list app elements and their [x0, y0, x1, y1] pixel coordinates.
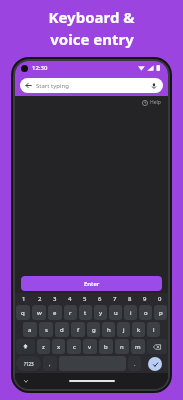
button[interactable]: w: [32, 305, 46, 320]
button[interactable]: 0: [153, 295, 167, 303]
staticText: 3: [53, 295, 57, 303]
staticText: k: [137, 326, 141, 334]
button[interactable]: g: [87, 322, 100, 337]
button[interactable]: 1: [16, 295, 31, 303]
staticText: .: [134, 360, 136, 368]
staticText: i: [130, 309, 132, 317]
staticText: 12:30: [32, 64, 48, 72]
button[interactable]: b: [99, 339, 113, 354]
staticText: Start typing: [36, 82, 69, 90]
staticText: y: [99, 309, 103, 317]
button[interactable]: c: [67, 339, 81, 354]
staticText: c: [73, 343, 76, 351]
button[interactable]: Backspace: [147, 339, 167, 354]
staticText: b: [104, 343, 108, 351]
staticText: Help: [150, 99, 161, 106]
button[interactable]: 9: [138, 295, 152, 303]
button[interactable]: n: [115, 339, 129, 354]
other: Back: [25, 82, 32, 89]
staticText: x: [57, 343, 61, 351]
staticText: z: [42, 343, 45, 351]
staticText: ?123: [24, 361, 34, 367]
button[interactable]: a: [23, 322, 37, 337]
button[interactable]: e: [48, 305, 62, 320]
staticText: h: [107, 326, 111, 334]
staticText: v: [88, 343, 92, 351]
button[interactable]: j: [117, 322, 130, 337]
staticText: n: [120, 343, 124, 351]
staticText: d: [60, 326, 64, 334]
button[interactable]: p: [154, 305, 167, 320]
button[interactable]: Help: [142, 99, 161, 106]
button[interactable]: t: [79, 305, 92, 320]
button[interactable]: h: [102, 322, 115, 337]
staticText: 8: [128, 295, 132, 303]
staticText: 6: [98, 295, 102, 303]
button[interactable]: 7: [108, 295, 122, 303]
button[interactable]: d: [55, 322, 69, 337]
staticText: voice entry: [50, 29, 134, 49]
staticText: a: [28, 326, 32, 334]
staticText: 0: [158, 295, 162, 303]
button[interactable]: 8: [123, 295, 137, 303]
staticText: 4: [68, 295, 72, 303]
button[interactable]: Enter: [21, 276, 162, 291]
button[interactable]: 6: [93, 295, 107, 303]
button[interactable]: u: [109, 305, 122, 320]
other: Voice input: [150, 82, 158, 90]
button[interactable]: v: [83, 339, 97, 354]
button[interactable]: 4: [63, 295, 77, 303]
staticText: r: [69, 309, 72, 317]
button[interactable]: Back: [20, 78, 163, 93]
staticText: e: [53, 309, 57, 317]
button[interactable]: r: [64, 305, 77, 320]
button[interactable]: s: [39, 322, 53, 337]
button[interactable]: 3: [48, 295, 62, 303]
button[interactable]: o: [139, 305, 152, 320]
button[interactable]: i: [124, 305, 137, 320]
staticText: 2: [38, 295, 42, 303]
button[interactable]: Done: [148, 357, 162, 371]
button[interactable]: Shift: [16, 339, 35, 354]
button[interactable]: ?123: [16, 356, 41, 371]
staticText: 1: [22, 295, 26, 303]
staticText: s: [45, 326, 48, 334]
staticText: 5: [83, 295, 87, 303]
staticText: 9: [143, 295, 147, 303]
button[interactable]: x: [52, 339, 65, 354]
staticText: Keyboard &: [48, 7, 135, 27]
staticText: j: [123, 326, 125, 334]
button[interactable]: 2: [32, 295, 47, 303]
staticText: q: [21, 309, 25, 317]
staticText: 7: [113, 295, 117, 303]
staticText: u: [114, 309, 118, 317]
staticText: p: [159, 309, 163, 317]
button[interactable]: 5: [78, 295, 92, 303]
button[interactable]: y: [94, 305, 107, 320]
button[interactable]: f: [71, 322, 85, 337]
staticText: Enter: [84, 280, 100, 288]
staticText: m: [135, 343, 141, 351]
button[interactable]: q: [16, 305, 30, 320]
button[interactable]: m: [131, 339, 145, 354]
staticText: l: [153, 326, 155, 334]
button[interactable]: ,: [43, 356, 57, 371]
staticText: f: [77, 326, 80, 334]
button[interactable]: l: [147, 322, 160, 337]
staticText: ,: [49, 360, 51, 368]
other: Hide keyboard: [23, 378, 29, 384]
staticText: g: [92, 326, 96, 334]
button[interactable]: .: [128, 356, 141, 371]
staticText: t: [84, 309, 87, 317]
staticText: w: [37, 309, 42, 317]
staticText: o: [144, 309, 148, 317]
button[interactable]: z: [37, 339, 50, 354]
button[interactable]: k: [132, 322, 145, 337]
